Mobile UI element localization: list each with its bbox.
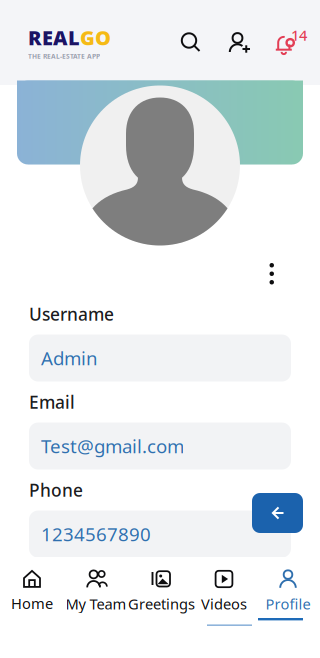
staticText: THE REAL-ESTATE APP <box>28 52 100 61</box>
button[interactable]: My Team <box>64 557 128 623</box>
staticText: 14 <box>291 25 307 45</box>
button[interactable]: Add contact <box>228 31 251 53</box>
button[interactable]: More options <box>259 255 284 292</box>
staticText: Phone <box>29 478 83 501</box>
staticText: Admin <box>41 346 98 370</box>
staticText: Greetings <box>128 594 195 613</box>
staticText: Username <box>29 302 114 325</box>
button[interactable]: Notifications <box>274 28 307 56</box>
staticText: Profile <box>265 594 310 613</box>
staticText: Videos <box>201 594 247 613</box>
staticText: Test@gmail.com <box>41 434 184 458</box>
staticText: Home <box>11 593 53 613</box>
staticText: Email <box>29 390 75 413</box>
button[interactable]: Greetings <box>128 557 192 623</box>
staticText: My Team <box>65 594 126 613</box>
staticText: REAL <box>28 24 80 51</box>
button[interactable]: Search <box>180 31 202 53</box>
button[interactable]: Home <box>0 557 64 623</box>
button[interactable]: Videos <box>192 557 256 623</box>
staticText: 1234567890 <box>41 522 151 546</box>
button[interactable]: Profile <box>256 557 320 623</box>
button[interactable]: Back <box>252 493 303 533</box>
staticText: GO <box>80 24 111 51</box>
